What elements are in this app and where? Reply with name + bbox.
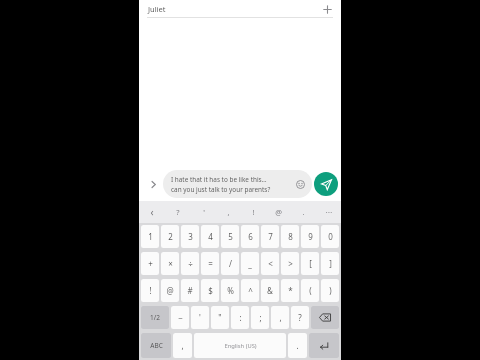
staticText: , — [227, 207, 230, 217]
button[interactable]: I hate that it has to be like this… — [163, 170, 312, 198]
button[interactable]: ; — [251, 306, 269, 329]
staticText: @ — [275, 207, 282, 217]
staticText: ^ — [248, 285, 253, 296]
staticText: . — [296, 340, 299, 351]
button[interactable]: < — [261, 252, 279, 275]
button[interactable]: ⋯ — [316, 201, 341, 223]
staticText: ; — [259, 312, 262, 323]
staticText: 1 — [148, 231, 153, 242]
button[interactable]: ! — [141, 279, 159, 302]
button[interactable]: 3 — [181, 225, 199, 248]
staticText: 9 — [308, 231, 313, 242]
button[interactable]: $ — [201, 279, 219, 302]
staticText: ' — [199, 312, 201, 323]
button[interactable]: _ — [241, 252, 259, 275]
button[interactable]: 9 — [301, 225, 319, 248]
staticText: + — [148, 258, 153, 269]
button[interactable]: [ — [301, 252, 319, 275]
button[interactable]: @ — [266, 201, 291, 223]
button[interactable]: " — [211, 306, 229, 329]
button[interactable]: Enter — [309, 333, 339, 358]
button[interactable]: Expand options — [143, 174, 163, 194]
button[interactable]: % — [221, 279, 239, 302]
button[interactable]: New conversation — [320, 2, 334, 16]
staticText: 0 — [328, 231, 333, 242]
button[interactable]: ' — [191, 306, 209, 329]
staticText: ÷ — [188, 258, 193, 269]
staticText: 4 — [208, 231, 213, 242]
button[interactable]: + — [141, 252, 159, 275]
button[interactable]: * — [281, 279, 299, 302]
staticText: ? — [298, 312, 302, 323]
staticText: × — [168, 258, 173, 269]
button[interactable]: 5 — [221, 225, 239, 248]
button[interactable]: / — [221, 252, 239, 275]
button[interactable]: × — [161, 252, 179, 275]
staticText: 8 — [288, 231, 293, 242]
staticText: ? — [176, 207, 180, 217]
staticText: & — [267, 285, 273, 296]
button[interactable]: 8 — [281, 225, 299, 248]
button[interactable]: ? — [165, 201, 191, 223]
staticText: " — [218, 312, 222, 323]
staticText: ! — [149, 285, 152, 296]
staticText: = — [208, 258, 213, 269]
staticText: ! — [252, 207, 255, 217]
staticText: 6 — [248, 231, 253, 242]
button[interactable]: # — [181, 279, 199, 302]
button[interactable]: & — [261, 279, 279, 302]
staticText: : — [239, 312, 242, 323]
staticText: # — [187, 285, 193, 296]
button[interactable]: . — [291, 201, 316, 223]
button[interactable]: : — [231, 306, 249, 329]
staticText: ⋯ — [325, 208, 333, 217]
staticText: − — [178, 312, 183, 323]
staticText: ‹ — [150, 205, 154, 219]
staticText: , — [279, 312, 282, 323]
button[interactable]: ÷ — [181, 252, 199, 275]
button[interactable]: 1/2 — [141, 306, 169, 329]
button[interactable]: Send — [314, 172, 338, 196]
button[interactable]: 6 — [241, 225, 259, 248]
button[interactable]: ‹ — [139, 201, 165, 223]
button[interactable]: ! — [241, 201, 266, 223]
staticText: _ — [248, 258, 252, 269]
button[interactable]: @ — [161, 279, 179, 302]
staticText: I hate that it has to be like this… — [171, 175, 267, 184]
button[interactable]: . — [288, 333, 307, 358]
staticText: ' — [203, 207, 205, 217]
staticText: / — [229, 258, 232, 269]
staticText: 2 — [168, 231, 173, 242]
button[interactable]: 7 — [261, 225, 279, 248]
button[interactable]: ( — [301, 279, 319, 302]
button[interactable]: ] — [321, 252, 339, 275]
staticText: 5 — [228, 231, 233, 242]
button[interactable]: 1 — [141, 225, 159, 248]
button[interactable]: 2 — [161, 225, 179, 248]
button[interactable]: = — [201, 252, 219, 275]
button[interactable]: Emoji — [292, 176, 308, 192]
staticText: % — [227, 285, 234, 296]
button[interactable]: English (US) — [194, 333, 286, 358]
button[interactable]: > — [281, 252, 299, 275]
button[interactable]: , — [173, 333, 192, 358]
button[interactable]: , — [216, 201, 241, 223]
staticText: > — [288, 258, 293, 269]
button[interactable]: ^ — [241, 279, 259, 302]
button[interactable]: 4 — [201, 225, 219, 248]
button[interactable]: ) — [321, 279, 339, 302]
button[interactable]: 0 — [321, 225, 339, 248]
button[interactable]: , — [271, 306, 289, 329]
staticText: ( — [309, 285, 312, 296]
staticText: $ — [208, 285, 213, 296]
button[interactable]: Juliet — [148, 4, 320, 14]
button[interactable]: ABC — [141, 333, 171, 358]
staticText: English (US) — [224, 342, 257, 350]
button[interactable]: − — [171, 306, 189, 329]
staticText: . — [302, 207, 305, 217]
button[interactable]: Backspace — [311, 306, 339, 329]
staticText: [ — [309, 258, 312, 269]
staticText: ABC — [150, 341, 163, 350]
button[interactable]: ? — [291, 306, 309, 329]
